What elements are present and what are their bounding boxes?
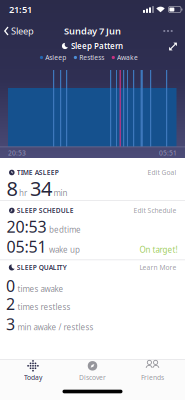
staticText: 34 [30,175,52,202]
staticText: Sleep [11,25,34,37]
staticText: wake up [49,244,80,255]
staticText: hr [19,188,27,198]
staticText: 8 [6,175,17,202]
staticText: Sunday 7 Jun [64,25,121,37]
staticText: On target! [139,244,177,255]
staticText: min awake / restless [17,322,93,332]
staticText: 3 [6,313,15,335]
staticText: Today [24,373,42,382]
staticText: SLEEP SCHEDULE [17,206,74,215]
staticText: Restless [79,53,104,62]
staticText: Awake [117,53,138,62]
staticText: 20:53 [6,216,46,237]
staticText: Sleep Pattern [71,41,123,51]
staticText: 05:51 [6,236,46,257]
button[interactable]: Expand chart [168,42,177,51]
button[interactable]: Sleep [0,25,34,37]
button[interactable]: Discover [65,360,120,382]
staticText: SLEEP QUALITY [17,263,67,272]
staticText: Learn More [139,263,176,272]
staticText: Discover [79,373,106,382]
staticText: Edit Schedule [133,206,176,215]
staticText: Friends [141,373,164,382]
staticText: times awake [17,284,63,294]
button[interactable]: Friends [125,360,180,382]
button[interactable]: Learn More [139,263,176,272]
staticText: times restless [17,301,70,312]
staticText: 2 [6,293,15,314]
staticText: 20:53 [8,149,26,157]
button[interactable]: Edit Goal [147,168,176,177]
staticText: Edit Goal [147,168,176,177]
staticText: 21:51 [9,3,32,16]
button[interactable]: More [163,30,173,32]
button[interactable]: Today [5,360,60,382]
staticText: 0 [6,275,15,296]
button[interactable]: Edit Schedule [133,206,176,215]
staticText: bedtime [49,224,81,235]
staticText: Asleep [45,53,66,62]
staticText: 05:51 [159,149,177,157]
staticText: TIME ASLEEP [17,168,59,177]
staticText: min [53,188,67,198]
